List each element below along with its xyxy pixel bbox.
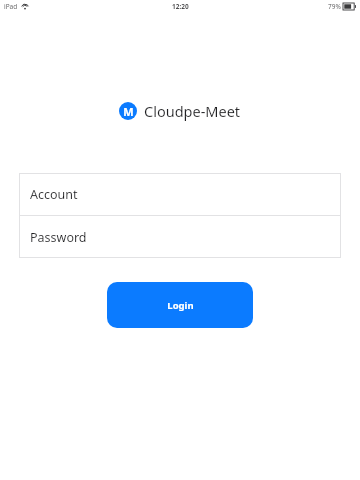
staticText: 12:20: [172, 2, 189, 11]
staticText: M: [123, 104, 134, 119]
other: Battery 79 percent: [343, 3, 356, 10]
staticText: Cloudpe-Meet: [144, 101, 241, 121]
staticText: Login: [167, 299, 194, 312]
staticText: iPad: [4, 2, 18, 11]
staticText: Account: [30, 186, 78, 203]
button[interactable]: Login: [107, 282, 253, 328]
staticText: Password: [30, 229, 87, 246]
other: Wi-Fi signal: [21, 3, 29, 10]
staticText: 79%: [328, 2, 341, 11]
button[interactable]: Password: [19, 216, 341, 258]
button[interactable]: Account: [19, 173, 341, 215]
